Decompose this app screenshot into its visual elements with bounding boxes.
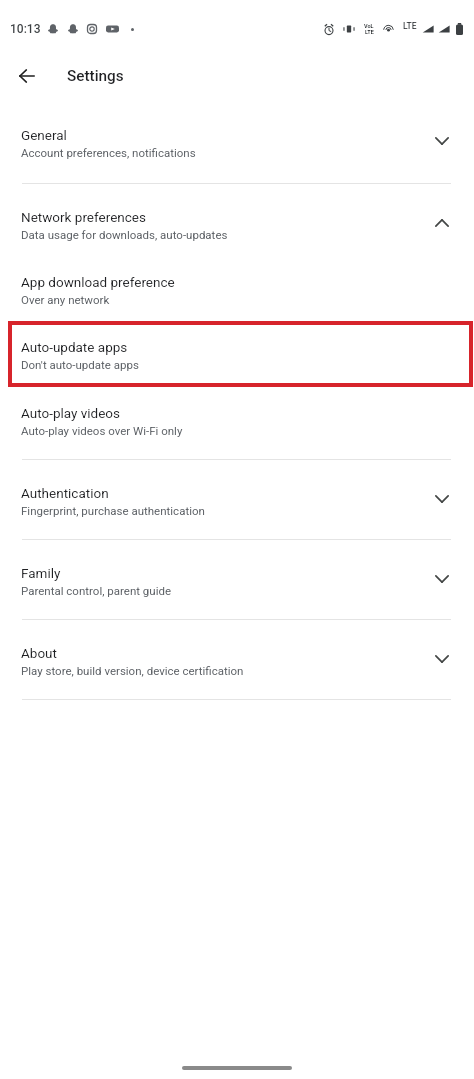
staticText: Network preferences bbox=[21, 209, 146, 225]
staticText: Auto-play videos over Wi-Fi only bbox=[21, 424, 183, 437]
staticText: Family bbox=[21, 565, 61, 581]
staticText: Account preferences, notifications bbox=[21, 146, 196, 159]
button[interactable]: General bbox=[0, 116, 474, 181]
staticText: General bbox=[21, 127, 67, 143]
staticText: LTE bbox=[403, 21, 417, 31]
button[interactable]: Auto-play videos bbox=[0, 394, 474, 459]
button[interactable]: Back bbox=[10, 59, 44, 93]
button[interactable]: Auto-update apps bbox=[0, 328, 474, 393]
staticText: Play store, build version, device certif… bbox=[21, 664, 244, 677]
button[interactable]: Family bbox=[0, 554, 474, 619]
button[interactable]: App download preference bbox=[0, 263, 474, 328]
button[interactable]: About bbox=[0, 634, 474, 699]
staticText: Auto-play videos bbox=[21, 405, 120, 421]
staticText: Auto-update apps bbox=[21, 339, 128, 355]
staticText: Data usage for downloads, auto-updates bbox=[21, 228, 228, 241]
staticText: Don't auto-update apps bbox=[21, 358, 139, 371]
staticText: VoL bbox=[364, 23, 374, 29]
staticText: About bbox=[21, 645, 57, 661]
staticText: Settings bbox=[67, 67, 124, 85]
staticText: LTE bbox=[365, 29, 374, 35]
button[interactable]: Network preferences bbox=[0, 198, 474, 263]
staticText: Parental control, parent guide bbox=[21, 584, 172, 597]
button[interactable]: Authentication bbox=[0, 474, 474, 539]
staticText: App download preference bbox=[21, 274, 175, 290]
staticText: Fingerprint, purchase authentication bbox=[21, 504, 205, 517]
staticText: Over any network bbox=[21, 293, 110, 306]
staticText: Authentication bbox=[21, 485, 109, 501]
staticText: 10:13 bbox=[10, 22, 41, 36]
